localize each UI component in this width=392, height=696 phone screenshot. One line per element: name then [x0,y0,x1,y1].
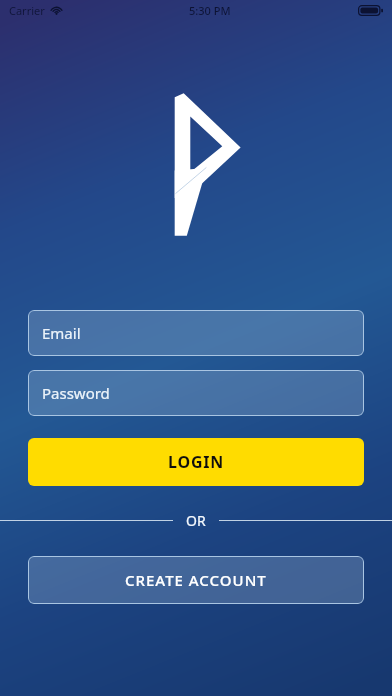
staticText: CREATE ACCOUNT [125,570,267,590]
button[interactable]: LOGIN [28,438,364,486]
staticText: OR [186,511,206,530]
staticText: Password [42,383,110,403]
button[interactable]: Password [28,370,364,416]
button[interactable]: Email [28,310,364,356]
staticText: LOGIN [168,451,225,473]
button[interactable]: CREATE ACCOUNT [28,556,364,604]
other: App logo [163,90,241,237]
staticText: Email [42,323,81,343]
staticText: Carrier [9,3,45,18]
staticText: 5:30 PM [189,3,231,18]
